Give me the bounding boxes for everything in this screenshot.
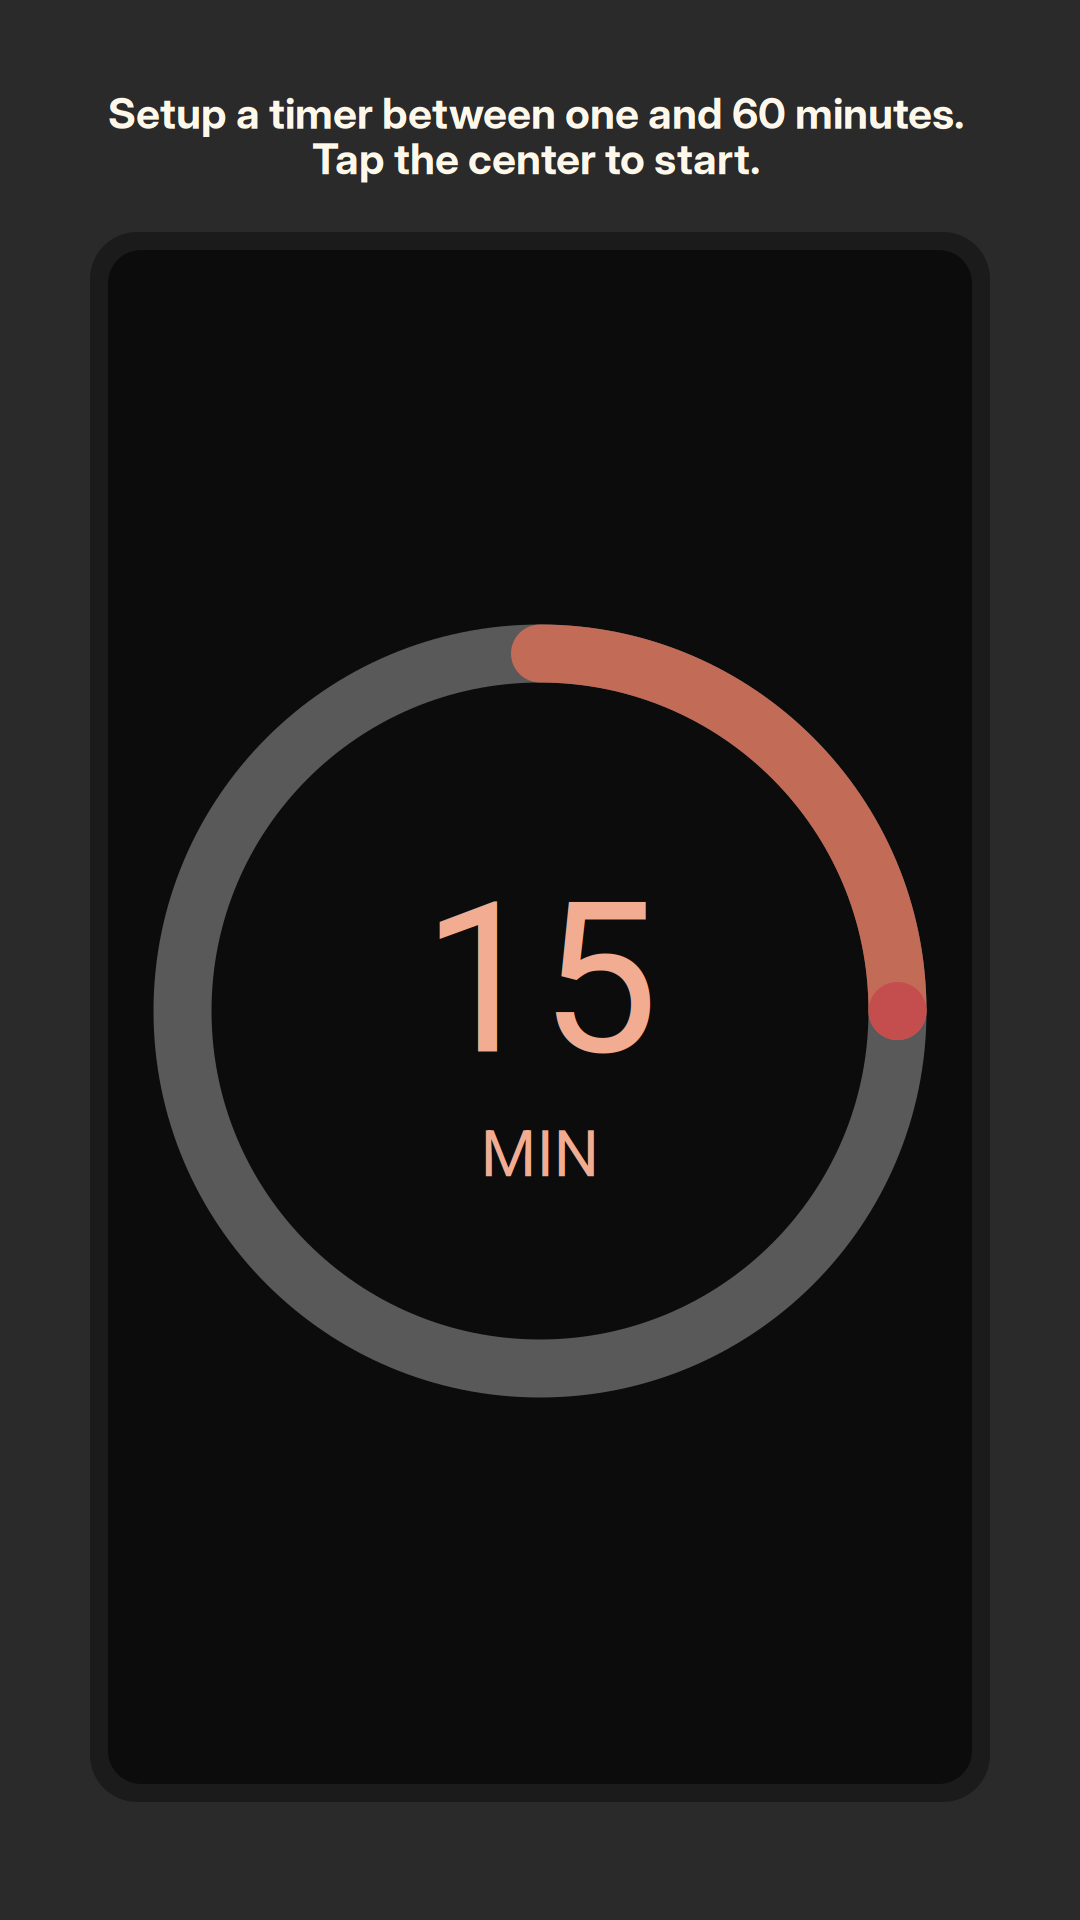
- staticText: MIN: [480, 1117, 599, 1192]
- staticText: Tap the center to start.: [312, 133, 760, 185]
- staticText: 15: [422, 856, 658, 1103]
- button[interactable]: Start 15 minute timer: [153, 624, 926, 1397]
- staticText: Setup a timer between one and 60 minutes…: [108, 87, 964, 139]
